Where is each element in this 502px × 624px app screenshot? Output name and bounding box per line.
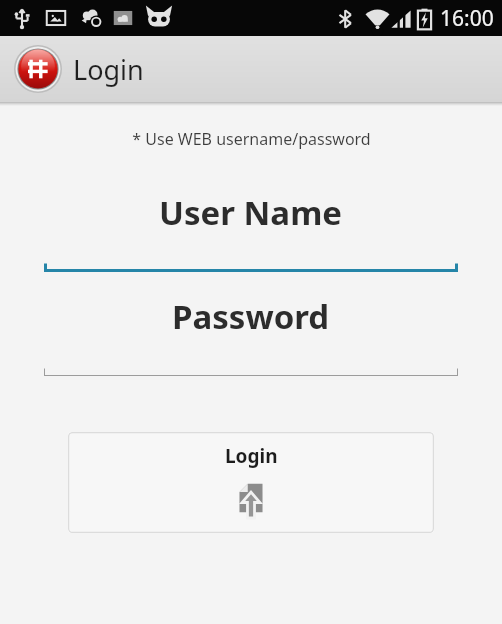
staticText: Login — [225, 443, 278, 469]
staticText: User Name — [159, 190, 343, 235]
staticText: 16:00 — [440, 4, 494, 33]
button[interactable]: Password — [44, 294, 458, 376]
staticText: Login — [73, 51, 144, 88]
button[interactable]: User Name — [44, 190, 458, 272]
other: Login — [235, 482, 267, 518]
button[interactable]: Login — [68, 432, 434, 533]
staticText: Password — [172, 294, 330, 339]
staticText: * Use WEB username/password — [132, 128, 371, 150]
